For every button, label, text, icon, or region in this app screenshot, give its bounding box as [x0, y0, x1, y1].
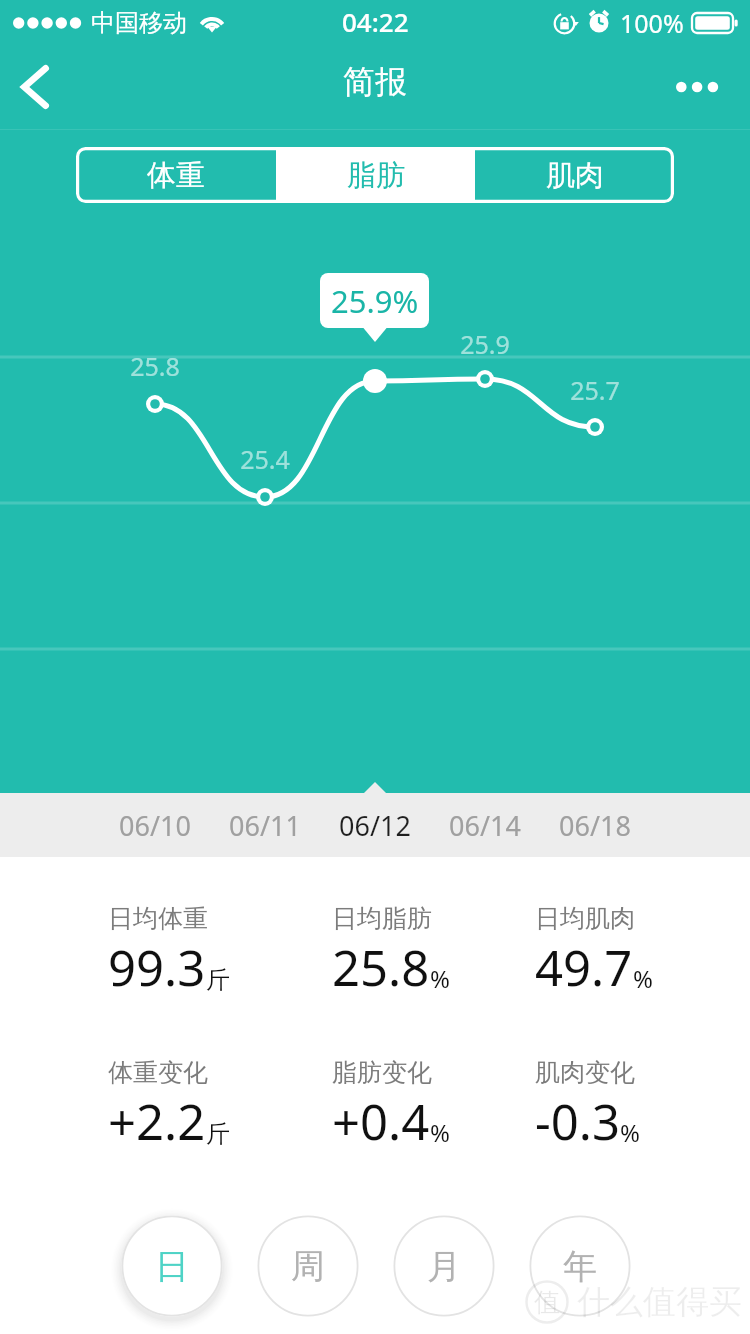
staticText: 值 — [534, 1286, 560, 1319]
button[interactable]: 周 — [250, 1208, 366, 1324]
button[interactable]: 肌肉 — [475, 147, 674, 203]
staticText: 25.8 — [332, 934, 430, 1001]
button[interactable]: 体重 — [76, 147, 276, 203]
staticText: 斤 — [206, 965, 230, 995]
staticText: 月 — [427, 1245, 461, 1288]
staticText: 脂肪变化 — [332, 1057, 432, 1088]
staticText: 体重变化 — [108, 1057, 208, 1088]
button[interactable]: Back — [0, 45, 70, 129]
button[interactable]: 年 — [522, 1208, 638, 1324]
button[interactable]: 06/18 — [540, 793, 650, 857]
staticText: % — [620, 1116, 640, 1149]
button[interactable]: 06/11 — [210, 793, 320, 857]
staticText: 04:22 — [342, 4, 409, 39]
button[interactable]: 06/14 — [430, 793, 540, 857]
button[interactable]: 脂肪 — [276, 147, 475, 203]
staticText: 25.7 — [570, 373, 620, 407]
staticText: 日 — [155, 1245, 189, 1288]
staticText: 06/10 — [119, 807, 191, 844]
staticText: 06/12 — [339, 807, 411, 844]
staticText: 中国移动 — [91, 8, 187, 38]
staticText: 100% — [620, 6, 684, 40]
staticText: 49.7 — [535, 934, 633, 1001]
staticText: 肌肉 — [546, 157, 604, 194]
button[interactable]: 日 — [114, 1208, 230, 1324]
staticText: 年 — [563, 1245, 597, 1288]
staticText: 脂肪 — [347, 157, 405, 194]
staticText: 06/14 — [449, 807, 521, 844]
staticText: +0.4 — [332, 1088, 430, 1155]
staticText: -0.3 — [535, 1088, 620, 1155]
staticText: 日均肌肉 — [535, 903, 635, 934]
button[interactable]: More options — [643, 45, 750, 129]
button[interactable]: 06/10 — [100, 793, 210, 857]
staticText: % — [430, 962, 450, 995]
staticText: % — [430, 1116, 450, 1149]
staticText: 日均体重 — [108, 903, 208, 934]
button[interactable]: 月 — [386, 1208, 502, 1324]
staticText: 06/11 — [229, 807, 301, 844]
staticText: % — [633, 962, 653, 995]
button[interactable]: 06/12 — [320, 793, 430, 857]
staticText: 25.4 — [240, 442, 290, 476]
staticText: 25.9 — [460, 327, 510, 361]
staticText: 肌肉变化 — [535, 1057, 635, 1088]
staticText: 99.3 — [108, 934, 206, 1001]
staticText: 体重 — [147, 157, 205, 194]
staticText: 斤 — [206, 1119, 230, 1149]
staticText: +2.2 — [108, 1088, 206, 1155]
staticText: 日均脂肪 — [332, 903, 432, 934]
staticText: 简报 — [343, 62, 407, 102]
staticText: 25.9% — [331, 280, 419, 322]
staticText: 周 — [291, 1245, 325, 1288]
staticText: 什么值得买 — [577, 1281, 742, 1323]
staticText: 25.8 — [130, 349, 180, 383]
staticText: 06/18 — [559, 807, 631, 844]
